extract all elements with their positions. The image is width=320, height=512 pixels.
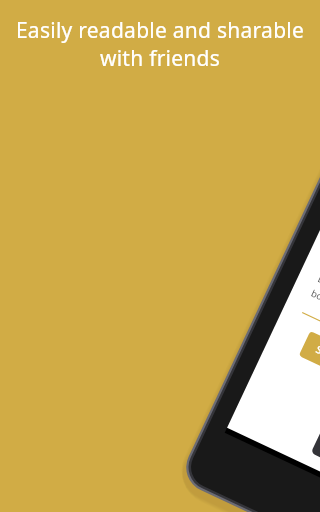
staticText: Easily readable and sharable with friend…: [0, 16, 320, 72]
